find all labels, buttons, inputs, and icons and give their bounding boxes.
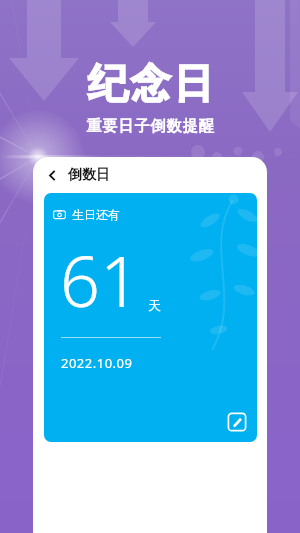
staticText: 天 xyxy=(148,297,161,313)
button[interactable]: 生日还有 xyxy=(44,193,257,442)
button[interactable]: Back xyxy=(41,164,63,186)
staticText: 2022.10.09 xyxy=(61,354,133,372)
staticText: 纪念日 xyxy=(86,58,215,108)
staticText: 生日还有 xyxy=(72,207,120,222)
staticText: 61 xyxy=(60,232,140,327)
staticText: 重要日子倒数提醒 xyxy=(86,117,214,136)
button[interactable]: Edit xyxy=(227,412,247,432)
staticText: 倒数日 xyxy=(68,166,110,184)
